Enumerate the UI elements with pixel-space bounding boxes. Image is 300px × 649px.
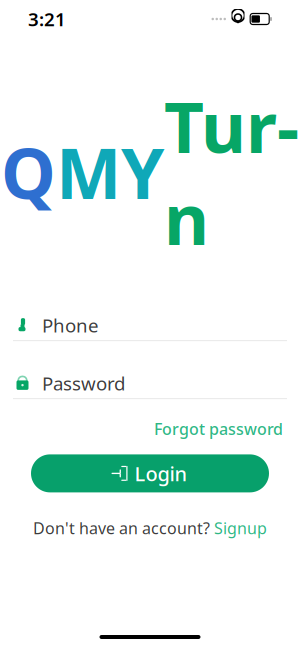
staticText: Password (42, 371, 125, 395)
button[interactable]: Forgot password (154, 414, 283, 443)
button[interactable]: Password (0, 368, 300, 399)
staticText: Forgot password (154, 418, 283, 439)
button[interactable]: Phone (0, 310, 300, 341)
staticText: Turn (164, 80, 299, 264)
staticText: Signup (214, 517, 267, 539)
staticText: Phone (42, 313, 99, 337)
staticText: Login (134, 460, 187, 487)
staticText: MY (56, 126, 164, 218)
staticText: Don't have an account? (33, 517, 214, 539)
staticText: Q (1, 126, 56, 218)
button[interactable]: Don't have an account? (33, 513, 267, 543)
button[interactable]: Login (31, 454, 269, 492)
staticText: 3:21 (28, 7, 66, 31)
